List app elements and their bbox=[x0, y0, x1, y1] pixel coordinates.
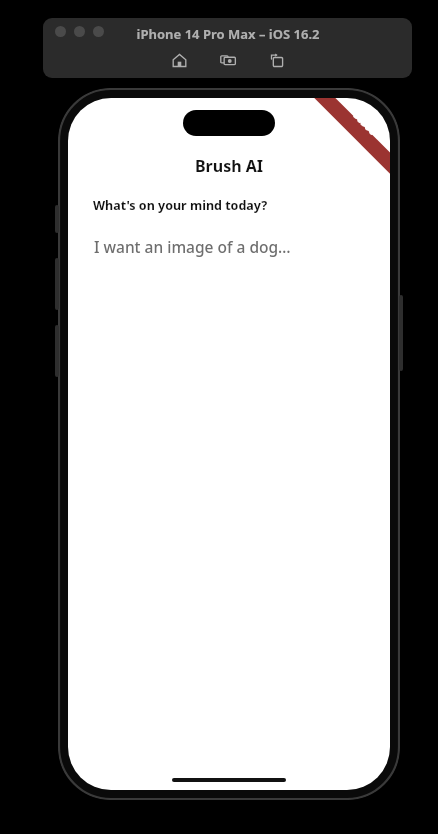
button[interactable]: Home bbox=[168, 49, 190, 71]
button[interactable] bbox=[93, 26, 104, 37]
staticText: iPhone 14 Pro Max – iOS 16.2 bbox=[136, 25, 320, 43]
button[interactable]: Volume down bbox=[55, 325, 59, 377]
staticText: What's on your mind today? bbox=[93, 197, 268, 214]
staticText: DEBUG bbox=[351, 110, 379, 137]
button[interactable]: Silent switch bbox=[55, 205, 59, 233]
button[interactable]: Volume up bbox=[55, 258, 59, 310]
button[interactable]: I want an image of a dog… bbox=[94, 236, 291, 257]
button[interactable] bbox=[74, 26, 85, 37]
button[interactable] bbox=[55, 26, 66, 37]
button[interactable]: Rotate bbox=[266, 49, 288, 71]
button[interactable]: Screenshot bbox=[217, 49, 239, 71]
staticText: Brush AI bbox=[68, 155, 390, 177]
